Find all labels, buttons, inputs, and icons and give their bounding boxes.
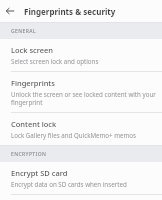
button[interactable]: Encrypt SD card	[0, 162, 162, 194]
staticText: Fingerprints	[11, 78, 55, 88]
staticText: Encrypt data on SD cards when inserted	[11, 180, 127, 188]
button[interactable]: Back	[0, 1, 20, 21]
staticText: Fingerprints & security	[24, 6, 116, 17]
staticText: Lock Gallery files and QuickMemo+ memos	[11, 131, 137, 139]
button[interactable]: Lock screen	[0, 39, 162, 71]
button[interactable]: Content lock	[0, 113, 162, 145]
staticText: Unlock the screen or see locked content …	[11, 90, 156, 98]
button[interactable]: Fingerprints	[0, 72, 162, 112]
staticText: fingerprint	[11, 98, 43, 106]
staticText: Lock screen	[11, 45, 54, 55]
staticText: Select screen lock and options	[11, 57, 99, 65]
staticText: Encrypt SD card	[11, 168, 68, 178]
staticText: GENERAL	[11, 28, 36, 35]
staticText: Content lock	[11, 119, 57, 129]
staticText: ENCRYPTION	[11, 151, 47, 158]
